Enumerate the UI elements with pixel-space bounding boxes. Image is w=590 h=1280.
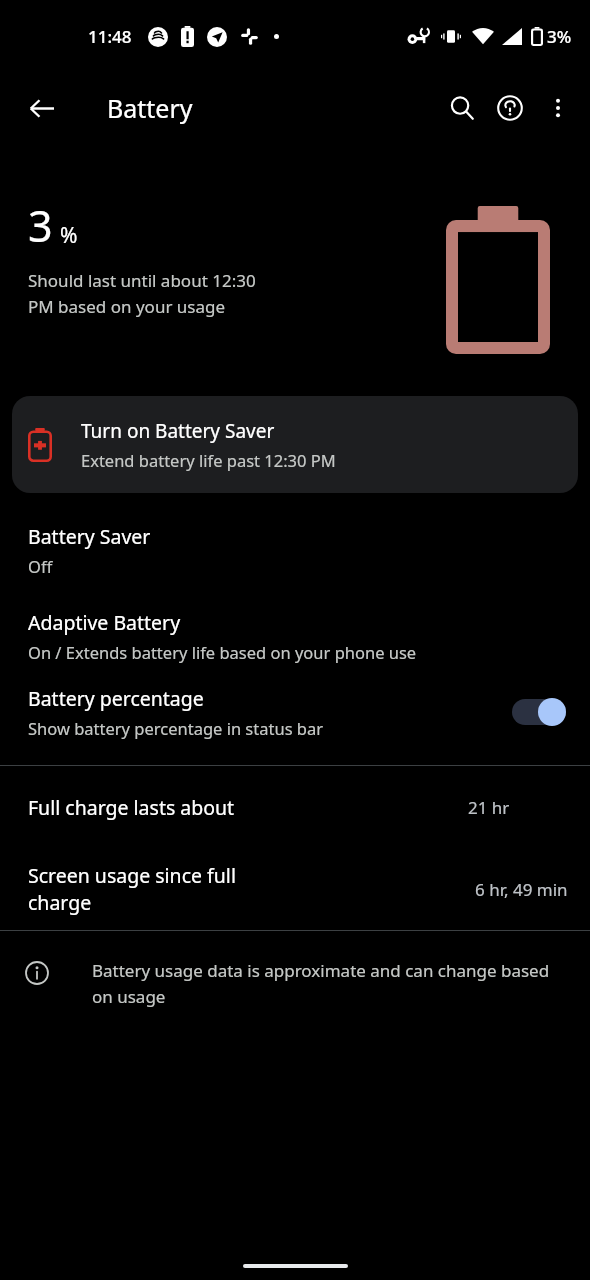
staticText: Turn on Battery Saver — [81, 418, 275, 444]
staticText: Screen usage since full charge — [28, 862, 293, 916]
staticText: Battery Saver — [28, 523, 151, 550]
button[interactable]: Adaptive Battery — [0, 609, 590, 663]
staticText: Battery percentage — [28, 685, 204, 712]
staticText: Battery — [107, 91, 193, 125]
staticText: 6 hr, 49 min — [475, 878, 568, 901]
button[interactable]: Screen usage since full charge — [0, 848, 590, 930]
button[interactable]: Battery Saver — [0, 523, 590, 577]
staticText: 3 — [28, 196, 53, 255]
button[interactable]: Battery percentage — [0, 685, 590, 739]
staticText: % — [60, 221, 78, 250]
staticText: Extend battery life past 12:30 PM — [81, 449, 336, 471]
button[interactable]: Search — [438, 84, 486, 132]
staticText: On / Extends battery life based on your … — [28, 641, 417, 663]
staticText: 3% — [547, 25, 572, 48]
staticText: Show battery percentage in status bar — [28, 717, 324, 739]
button[interactable]: Full charge lasts about — [0, 766, 590, 848]
button[interactable]: Help — [486, 84, 534, 132]
staticText: 21 hr — [468, 796, 510, 819]
staticText: 11:48 — [88, 25, 132, 48]
staticText: Should last until about 12:30 PM based o… — [28, 269, 276, 318]
staticText: Full charge lasts about — [28, 794, 235, 821]
button[interactable]: More options — [534, 84, 582, 132]
staticText: Battery usage data is approximate and ca… — [92, 959, 550, 1008]
button[interactable]: Turn on Battery Saver — [12, 396, 578, 493]
staticText: Adaptive Battery — [28, 609, 181, 636]
button[interactable]: Back — [18, 85, 64, 131]
staticText: Off — [28, 555, 53, 577]
